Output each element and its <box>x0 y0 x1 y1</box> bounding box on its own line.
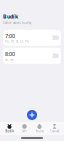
staticText: Žádné aktivní budíky <box>3 21 31 25</box>
button[interactable]: Budík <box>2 123 17 133</box>
staticText: Budík <box>3 13 18 20</box>
staticText: Budík <box>5 129 13 133</box>
staticText: Stopky <box>35 129 43 133</box>
button[interactable]: 8:00 <box>3 48 61 64</box>
staticText: 8:00 <box>5 50 15 57</box>
button[interactable]: Svět <box>17 123 32 133</box>
staticText: Svět <box>22 129 27 133</box>
staticText: Časovač <box>50 129 59 133</box>
button[interactable]: Časovač <box>47 123 62 133</box>
button[interactable]: Přidat budík <box>27 110 37 120</box>
staticText: 7:00 <box>5 32 15 39</box>
staticText: So, Ne <box>5 58 14 61</box>
staticText: Po, Út, St, Čt, Pá <box>5 40 28 43</box>
button[interactable]: Stopky <box>32 123 47 133</box>
button[interactable]: 7:00 <box>3 30 61 46</box>
